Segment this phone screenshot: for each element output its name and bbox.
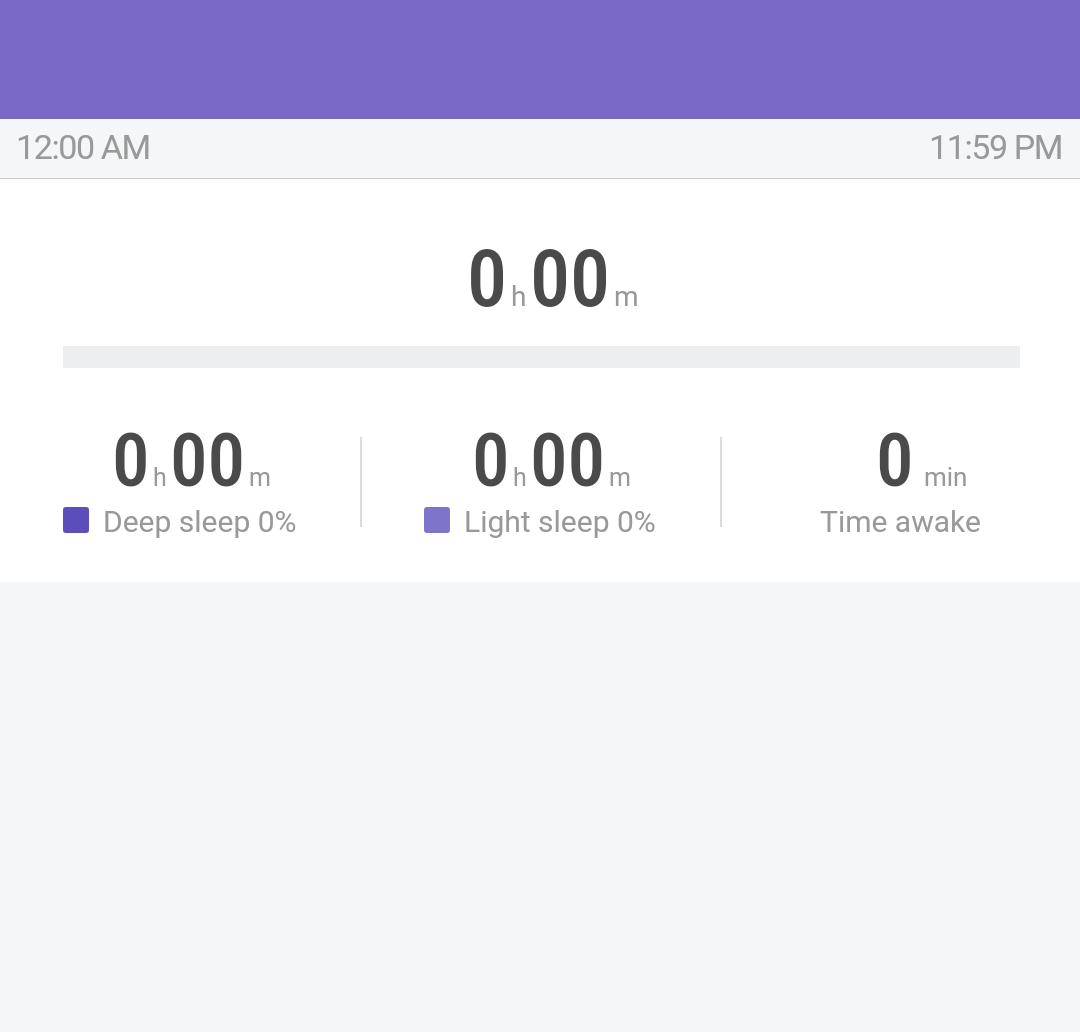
staticText: 12:00 AM <box>16 127 150 167</box>
staticText: 0 <box>467 232 508 326</box>
staticText: h <box>511 280 527 313</box>
staticText: 00 <box>530 416 606 504</box>
button[interactable]: 0 <box>720 416 1080 539</box>
staticText: 0 <box>112 416 150 504</box>
staticText: Time awake <box>820 504 981 539</box>
staticText: h <box>153 463 167 492</box>
staticText: min <box>924 462 968 492</box>
staticText: 00 <box>530 232 611 326</box>
staticText: m <box>614 280 639 313</box>
staticText: 00 <box>170 416 246 504</box>
button[interactable]: 12:00 AM <box>0 119 1080 178</box>
staticText: m <box>609 463 631 492</box>
staticText: 0 <box>876 416 914 504</box>
staticText: 0 <box>472 416 510 504</box>
button[interactable]: 0 <box>360 416 720 539</box>
staticText: Light sleep 0% <box>464 504 656 539</box>
staticText: Deep sleep 0% <box>103 504 297 539</box>
staticText: m <box>249 463 271 492</box>
staticText: h <box>513 463 527 492</box>
staticText: 11:59 PM <box>929 127 1063 167</box>
button[interactable]: 0 <box>0 416 360 539</box>
button[interactable]: 0 <box>0 179 1080 582</box>
